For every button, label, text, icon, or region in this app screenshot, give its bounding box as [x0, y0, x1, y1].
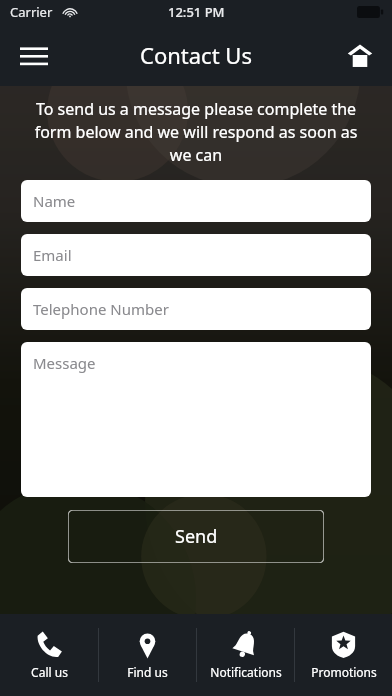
button[interactable]: Telephone Number — [21, 288, 371, 330]
staticText: To send us a message please complete the… — [22, 98, 370, 166]
staticText: Send — [175, 524, 218, 549]
staticText: Promotions — [311, 664, 377, 680]
staticText: Call us — [31, 664, 68, 680]
button[interactable]: Message — [21, 342, 371, 497]
staticText: Telephone Number — [33, 299, 169, 319]
button[interactable]: Email — [21, 234, 371, 276]
staticText: Name — [33, 191, 76, 211]
staticText: Message — [33, 353, 96, 373]
staticText: Notifications — [210, 664, 282, 680]
button[interactable]: Promotions — [295, 614, 392, 696]
button[interactable]: Call us — [0, 614, 98, 696]
staticText: Find us — [127, 664, 168, 680]
staticText: Email — [33, 245, 72, 265]
button[interactable]: Home — [336, 31, 384, 79]
staticText: 12:51 PM — [168, 3, 225, 21]
staticText: Carrier — [10, 3, 53, 21]
button[interactable]: Notifications — [197, 614, 294, 696]
button[interactable]: Name — [21, 180, 371, 222]
button[interactable]: Send — [68, 510, 324, 563]
staticText: Contact Us — [140, 40, 252, 70]
button[interactable]: Menu — [10, 31, 58, 79]
button[interactable]: Find us — [99, 614, 196, 696]
